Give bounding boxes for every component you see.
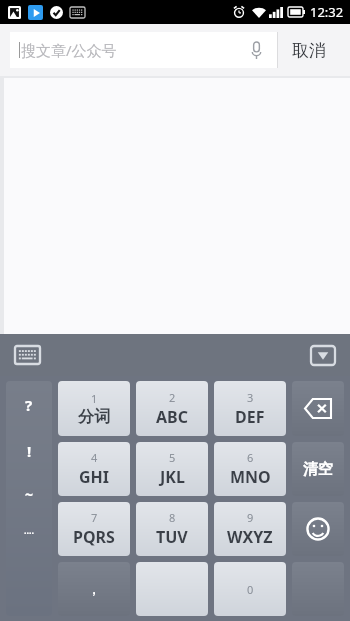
staticText: 清空 bbox=[303, 460, 333, 479]
staticText: 取消 bbox=[292, 40, 326, 61]
staticText: 5 bbox=[169, 450, 176, 465]
staticText: ~ bbox=[25, 485, 34, 504]
staticText: 4 bbox=[91, 450, 98, 465]
staticText: ? bbox=[25, 395, 33, 415]
staticText: ， bbox=[86, 579, 102, 599]
button[interactable]: 1 bbox=[58, 381, 130, 436]
staticText: 搜文章/公众号 bbox=[21, 40, 117, 60]
button[interactable]: Voice search bbox=[243, 37, 269, 63]
button[interactable] bbox=[136, 562, 208, 616]
staticText: PQRS bbox=[73, 526, 115, 548]
button[interactable]: ， bbox=[58, 562, 130, 616]
staticText: 8 bbox=[169, 510, 176, 525]
button[interactable]: 6 bbox=[214, 442, 286, 496]
staticText: 7 bbox=[91, 510, 98, 525]
staticText: JKL bbox=[160, 466, 185, 488]
staticText: TUV bbox=[156, 526, 188, 548]
staticText: 12:32 bbox=[310, 3, 344, 21]
button[interactable]: Enter bbox=[292, 562, 344, 616]
button[interactable]: Clear bbox=[292, 442, 344, 496]
button[interactable]: ? bbox=[6, 381, 52, 616]
button[interactable]: 0 bbox=[214, 562, 286, 616]
staticText: MNO bbox=[230, 466, 271, 488]
staticText: GHI bbox=[79, 466, 110, 488]
button[interactable]: 取消 bbox=[278, 32, 340, 68]
staticText: 6 bbox=[247, 450, 254, 465]
staticText: 1 bbox=[91, 391, 98, 406]
staticText: 分词 bbox=[78, 407, 110, 427]
staticText: ···· bbox=[24, 526, 35, 538]
button[interactable]: Delete bbox=[292, 381, 344, 436]
staticText: 3 bbox=[247, 390, 254, 405]
staticText: DEF bbox=[235, 406, 265, 428]
button[interactable]: Hide keyboard bbox=[308, 344, 338, 366]
button[interactable]: Switch keyboard bbox=[12, 344, 42, 366]
button[interactable]: 3 bbox=[214, 381, 286, 436]
button[interactable]: 8 bbox=[136, 502, 208, 556]
button[interactable]: Emoji bbox=[292, 502, 344, 556]
staticText: 2 bbox=[169, 390, 176, 405]
button[interactable]: 9 bbox=[214, 502, 286, 556]
staticText: ! bbox=[27, 441, 32, 461]
staticText: ABC bbox=[156, 406, 188, 428]
button[interactable]: 2 bbox=[136, 381, 208, 436]
button[interactable]: 7 bbox=[58, 502, 130, 556]
staticText: 9 bbox=[247, 510, 254, 525]
button[interactable]: 搜文章/公众号 bbox=[10, 32, 277, 68]
button[interactable]: 4 bbox=[58, 442, 130, 496]
button[interactable]: 5 bbox=[136, 442, 208, 496]
staticText: WXYZ bbox=[227, 526, 273, 548]
staticText: 0 bbox=[247, 582, 254, 597]
